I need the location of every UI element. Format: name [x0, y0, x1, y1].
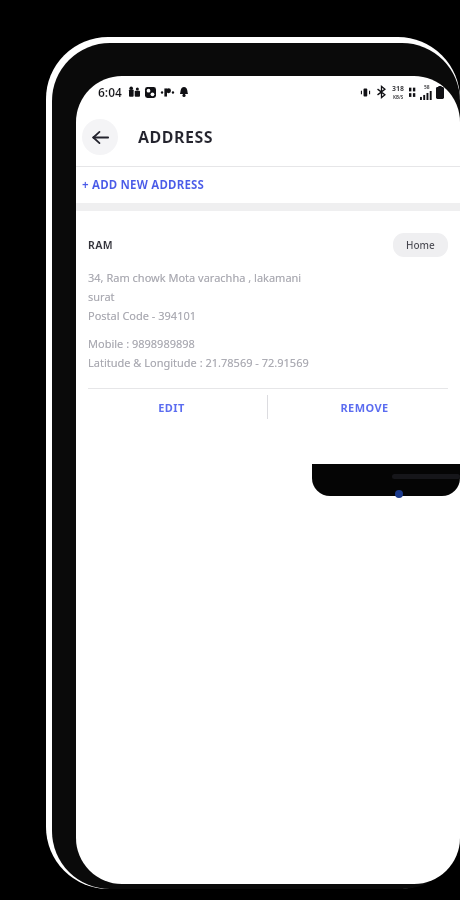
button[interactable]: EDIT — [76, 389, 267, 425]
button[interactable]: Home — [393, 233, 448, 257]
staticText: surat — [88, 289, 115, 304]
button[interactable]: Back — [82, 119, 118, 155]
staticText: Postal Code - 394101 — [88, 308, 197, 323]
staticText: 6:04 — [98, 84, 122, 100]
staticText: Home — [406, 238, 435, 252]
staticText: EDIT — [158, 400, 185, 415]
staticText: KB/S — [393, 94, 404, 100]
staticText: Mobile : 9898989898 — [88, 336, 195, 351]
staticText: REMOVE — [340, 400, 389, 415]
staticText: 58 — [424, 84, 430, 91]
staticText: 34, Ram chowk Mota varachha , lakamani — [88, 270, 302, 285]
button[interactable]: + ADD NEW ADDRESS — [76, 167, 460, 203]
button[interactable]: REMOVE — [268, 389, 460, 425]
staticText: ADDRESS — [138, 126, 214, 148]
staticText: + ADD NEW ADDRESS — [82, 177, 205, 193]
staticText: RAM — [88, 238, 113, 252]
staticText: Latitude & Longitude : 21.78569 - 72.915… — [88, 355, 309, 370]
staticText: 318 — [392, 84, 405, 94]
